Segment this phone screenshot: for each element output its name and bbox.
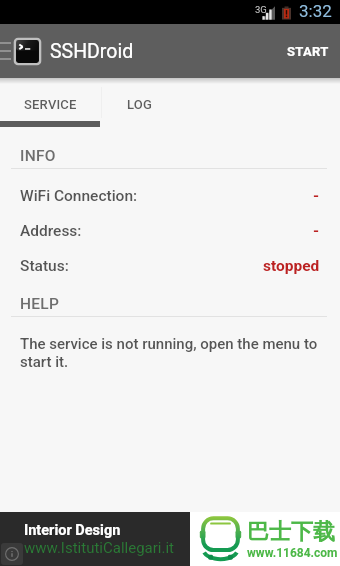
staticText: LOG bbox=[127, 97, 153, 112]
button[interactable]: Navigate up bbox=[0, 24, 43, 78]
staticText: Status: bbox=[20, 257, 69, 275]
staticText: HELP bbox=[20, 295, 60, 313]
staticText: - bbox=[313, 187, 320, 205]
button[interactable]: Status: bbox=[0, 248, 340, 283]
other: Ad info bbox=[1, 543, 23, 565]
button[interactable]: WiFi Connection: bbox=[0, 178, 340, 213]
button[interactable]: Interior Design bbox=[0, 512, 190, 566]
button[interactable]: LOG bbox=[102, 78, 177, 127]
staticText: Interior Design bbox=[24, 522, 121, 539]
staticText: START bbox=[287, 44, 329, 59]
staticText: SSHDroid bbox=[50, 40, 134, 63]
staticText: The service is not running, open the men… bbox=[20, 335, 322, 371]
staticText: WiFi Connection: bbox=[20, 187, 138, 205]
staticText: 巴士下载 bbox=[247, 518, 335, 546]
button[interactable]: Address: bbox=[0, 213, 340, 248]
staticText: INFO bbox=[20, 147, 56, 165]
staticText: 3G bbox=[255, 4, 267, 15]
staticText: SERVICE bbox=[24, 97, 77, 112]
staticText: www.11684.com bbox=[247, 546, 338, 560]
staticText: - bbox=[313, 222, 320, 240]
button[interactable]: START bbox=[274, 24, 340, 78]
staticText: Address: bbox=[20, 222, 82, 240]
button[interactable]: SERVICE bbox=[0, 78, 101, 127]
staticText: stopped bbox=[263, 257, 320, 275]
staticText: 3:32 bbox=[299, 1, 332, 21]
staticText: www.IstitutiCallegari.it bbox=[24, 539, 174, 557]
